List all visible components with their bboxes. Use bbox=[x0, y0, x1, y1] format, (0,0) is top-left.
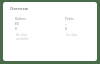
staticText: Overview bbox=[10, 6, 28, 11]
staticText: No data bbox=[16, 33, 28, 37]
button[interactable]: Balance bbox=[15, 17, 65, 31]
staticText: Balance bbox=[15, 17, 27, 21]
staticText: -- bbox=[65, 22, 67, 26]
button[interactable]: Points bbox=[65, 17, 97, 31]
staticText: 0 bbox=[15, 27, 17, 31]
staticText: No data bbox=[66, 33, 78, 37]
staticText: $0 bbox=[15, 22, 19, 26]
staticText: Points bbox=[65, 17, 74, 21]
staticText: 0 bbox=[65, 27, 67, 31]
staticText: available bbox=[16, 37, 29, 41]
